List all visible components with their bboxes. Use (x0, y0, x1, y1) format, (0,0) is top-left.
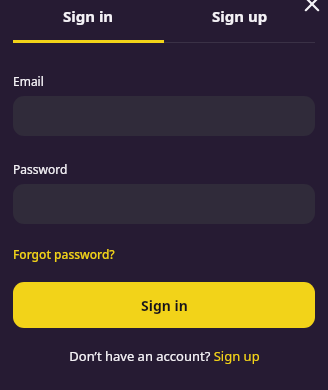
button[interactable]: Sign in (13, 282, 315, 328)
button[interactable]: Forgot password? (13, 246, 115, 262)
staticText: Don’t have an account? Sign up (69, 347, 260, 365)
button[interactable]: Close (298, 0, 326, 18)
staticText: Sign up (212, 6, 268, 26)
staticText: Sign in (141, 296, 188, 315)
button[interactable]: Don’t have an account? Sign up (69, 347, 260, 365)
staticText: Sign in (63, 6, 114, 26)
staticText: Email (13, 73, 44, 89)
button[interactable]: Sign in (13, 0, 164, 32)
button[interactable]: Sign up (164, 0, 315, 32)
staticText: Password (13, 161, 68, 177)
staticText: Forgot password? (13, 246, 115, 262)
